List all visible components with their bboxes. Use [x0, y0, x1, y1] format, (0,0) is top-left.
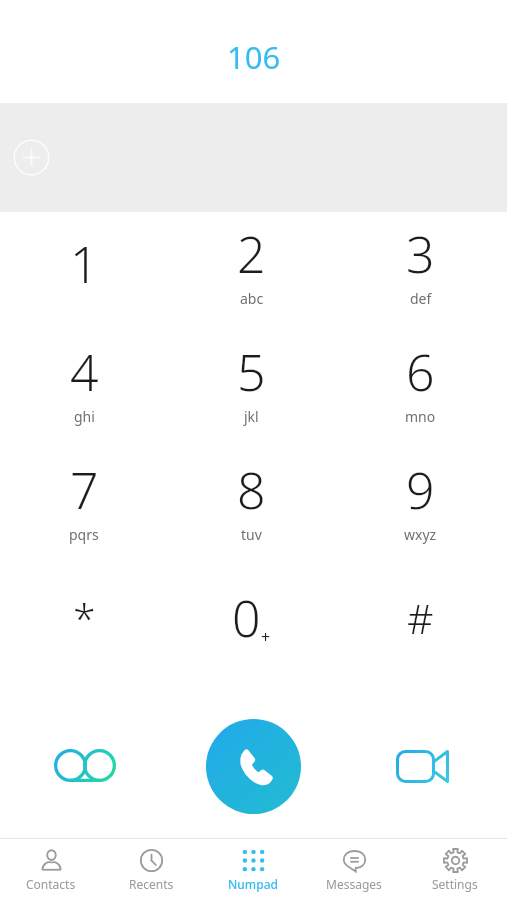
staticText: 9	[406, 456, 435, 524]
staticText: 3	[406, 220, 435, 288]
staticText: 8	[237, 456, 266, 524]
staticText: 5	[237, 338, 266, 406]
button[interactable]: Recents	[101, 839, 202, 900]
staticText: 106	[227, 36, 281, 78]
button[interactable]: Voicemail	[0, 706, 169, 826]
button[interactable]: 5	[168, 330, 334, 448]
staticText: tuv	[241, 525, 262, 544]
staticText: Recents	[129, 876, 174, 892]
staticText: 0	[232, 584, 261, 652]
button[interactable]: 9	[334, 448, 507, 566]
staticText: def	[410, 289, 432, 308]
button[interactable]: 4	[0, 330, 168, 448]
staticText: ghi	[74, 407, 95, 426]
button[interactable]: 3	[334, 212, 507, 330]
staticText: +	[261, 626, 271, 648]
staticText: *	[73, 590, 96, 646]
button[interactable]: 8	[168, 448, 334, 566]
staticText: Contacts	[26, 876, 76, 892]
button[interactable]: Messages	[303, 839, 404, 900]
button[interactable]: Add contact	[13, 139, 50, 176]
button[interactable]: Numpad	[202, 839, 303, 900]
staticText: 1	[70, 230, 99, 298]
button[interactable]: Contacts	[0, 839, 101, 900]
staticText: jkl	[244, 407, 259, 426]
staticText: abc	[240, 289, 264, 308]
staticText: 4	[70, 338, 99, 406]
staticText: mno	[405, 407, 436, 426]
button[interactable]: *	[0, 566, 168, 684]
button[interactable]: #	[334, 566, 507, 684]
staticText: Messages	[326, 876, 382, 892]
button[interactable]: Settings	[404, 839, 505, 900]
staticText: #	[407, 590, 434, 646]
button[interactable]: 0	[168, 566, 334, 684]
button[interactable]: 7	[0, 448, 168, 566]
staticText: 6	[406, 338, 435, 406]
staticText: Numpad	[228, 876, 278, 892]
button[interactable]: 1	[0, 212, 168, 330]
button[interactable]: Call	[206, 719, 301, 814]
staticText: 2	[237, 220, 266, 288]
button[interactable]: 6	[334, 330, 507, 448]
staticText: pqrs	[69, 525, 99, 544]
button[interactable]: 2	[168, 212, 334, 330]
staticText: Settings	[432, 876, 478, 892]
button[interactable]: Video call	[338, 706, 507, 826]
staticText: wxyz	[404, 525, 437, 544]
staticText: 7	[70, 456, 99, 524]
